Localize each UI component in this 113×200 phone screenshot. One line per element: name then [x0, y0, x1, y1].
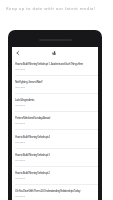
button[interactable]: Luck & Ingredients [12, 97, 98, 115]
staticText: Net Fighting - Second Rate!! [15, 80, 43, 84]
staticText: MAY 6, 2019 [15, 121, 25, 124]
staticText: MAY 6, 2019 [15, 158, 25, 161]
button[interactable]: Net Fighting - Second Rate!! [12, 79, 98, 97]
staticText: MAY 6, 2019 [15, 194, 25, 197]
button[interactable]: How to Build Winning Vehicles pt 2 [12, 170, 98, 188]
button[interactable]: How to Build Winning Vehicles pt 4 [12, 134, 98, 152]
staticText: MAY 6, 2019 [15, 85, 25, 88]
staticText: How to Build Winning Vehicles pt 2 [15, 171, 50, 175]
button[interactable]: Pretend Weekend Sunday Abroad [12, 115, 98, 133]
staticText: Luck & Ingredients [15, 98, 34, 102]
staticText: Keep up to date with our latest media! [6, 6, 96, 12]
button[interactable]: How to Build Winning Vehicles pt 3 [12, 152, 98, 170]
staticText: MAY 6, 2019 [15, 176, 25, 179]
staticText: MAY 6, 2019 [15, 67, 25, 70]
button[interactable]: Oh You Drive With Them 2.0: Understandin… [12, 188, 98, 200]
button[interactable]: Back [13, 48, 22, 57]
button[interactable]: How to Build Winning Vehicles pt 1 - Acc… [12, 61, 98, 79]
staticText: MAY 6, 2019 [15, 140, 25, 143]
staticText: Pretend Weekend Sunday Abroad [15, 116, 51, 120]
staticText: How to Build Winning Vehicles pt 1 - Acc… [15, 62, 83, 66]
staticText: How to Build Winning Vehicles pt 4 [15, 135, 50, 139]
staticText: How to Build Winning Vehicles pt 3 [15, 153, 50, 157]
staticText: Oh You Drive With Them 2.0: Understandin… [15, 189, 81, 193]
staticText: MAY 6, 2019 [15, 103, 25, 106]
button[interactable]: Logo [50, 49, 57, 56]
